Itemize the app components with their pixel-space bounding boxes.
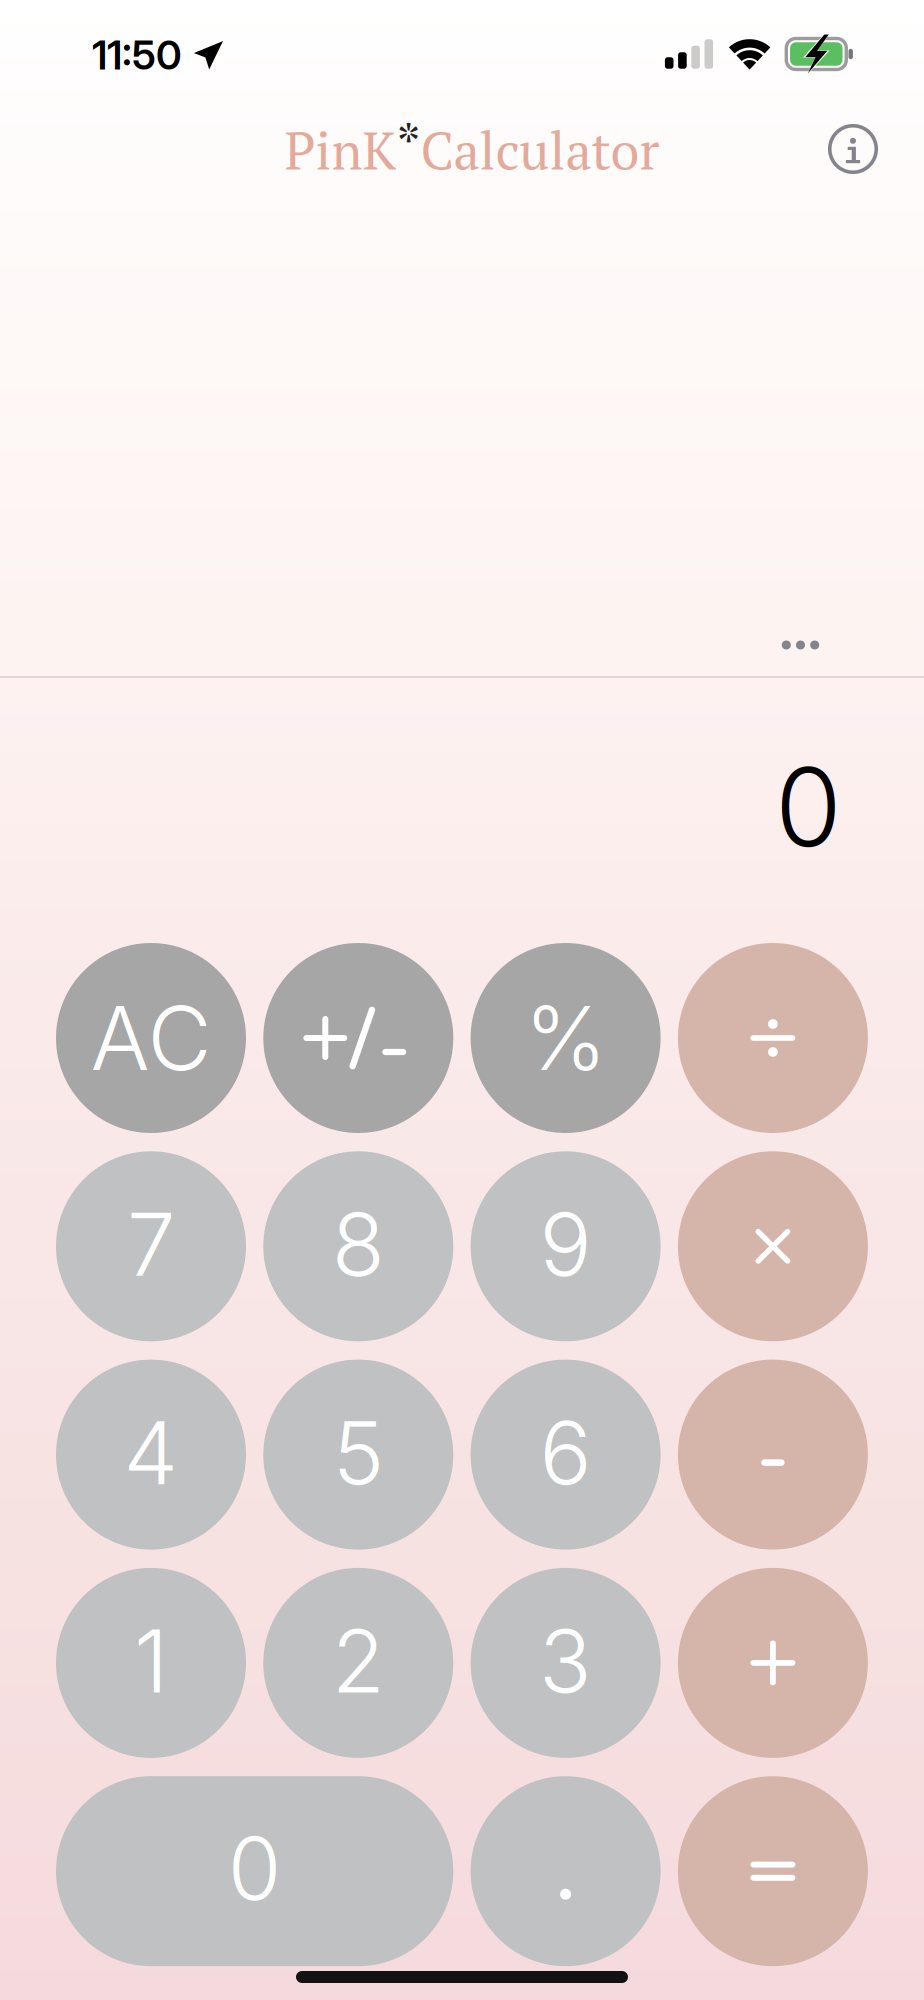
staticText: 7 — [127, 1192, 175, 1297]
button[interactable]: Divide — [678, 943, 868, 1133]
button[interactable]: 4 — [56, 1360, 246, 1550]
staticText: Calculator — [420, 115, 659, 184]
staticText: * — [396, 108, 420, 177]
staticText: AC — [90, 985, 211, 1091]
staticText: PinK — [284, 115, 396, 184]
button[interactable]: History — [773, 628, 827, 662]
button[interactable]: 2 — [263, 1568, 453, 1758]
button[interactable]: Equals — [678, 1776, 868, 1966]
button[interactable]: % — [471, 943, 661, 1133]
staticText: 6 — [540, 1400, 592, 1505]
button[interactable]: 7 — [56, 1151, 246, 1341]
button[interactable]: Minus — [678, 1360, 868, 1550]
staticText: 0 — [228, 1816, 282, 1921]
button[interactable]: 3 — [471, 1568, 661, 1758]
staticText: % — [525, 985, 607, 1091]
button[interactable]: Decimal point — [471, 1776, 661, 1966]
button[interactable]: 8 — [263, 1151, 453, 1341]
button[interactable]: Info — [827, 123, 879, 175]
button[interactable]: 9 — [471, 1151, 661, 1341]
staticText: 8 — [332, 1192, 385, 1297]
staticText: 9 — [540, 1192, 592, 1297]
button[interactable]: Toggle sign — [263, 943, 453, 1133]
button[interactable]: Plus — [678, 1568, 868, 1758]
staticText: 5 — [333, 1400, 384, 1505]
staticText: 2 — [332, 1608, 385, 1713]
staticText: 1 — [134, 1608, 168, 1713]
button[interactable]: 6 — [471, 1360, 661, 1550]
button[interactable]: Multiply — [678, 1151, 868, 1341]
staticText: 3 — [539, 1608, 592, 1713]
staticText: 4 — [123, 1400, 178, 1505]
staticText: 11:50 — [92, 31, 182, 79]
button[interactable]: 0 — [56, 1776, 453, 1966]
button[interactable]: 5 — [263, 1360, 453, 1550]
button[interactable]: AC — [56, 943, 246, 1133]
staticText: 0 — [775, 742, 842, 872]
button[interactable]: 1 — [56, 1568, 246, 1758]
